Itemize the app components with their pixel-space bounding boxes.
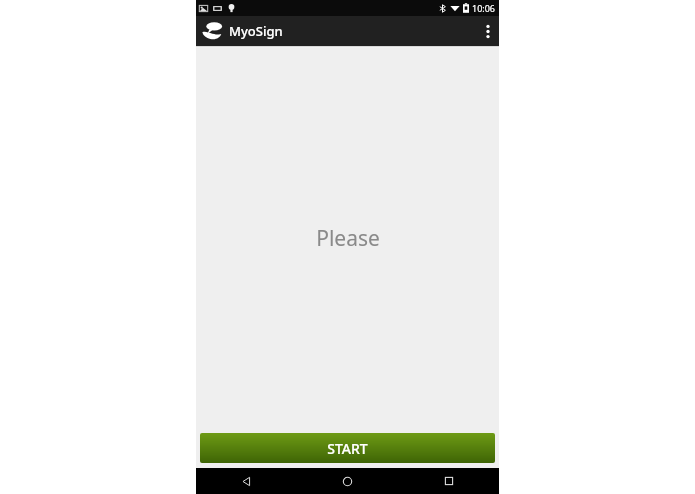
button[interactable]: Home: [297, 468, 398, 494]
staticText: MyoSign: [229, 22, 283, 40]
button[interactable]: More options: [477, 16, 499, 46]
button[interactable]: Back: [196, 468, 297, 494]
button[interactable]: START: [200, 433, 495, 463]
staticText: START: [327, 439, 368, 458]
staticText: Please: [316, 224, 380, 253]
button[interactable]: Recent apps: [398, 468, 499, 494]
staticText: 10:06: [472, 2, 496, 14]
